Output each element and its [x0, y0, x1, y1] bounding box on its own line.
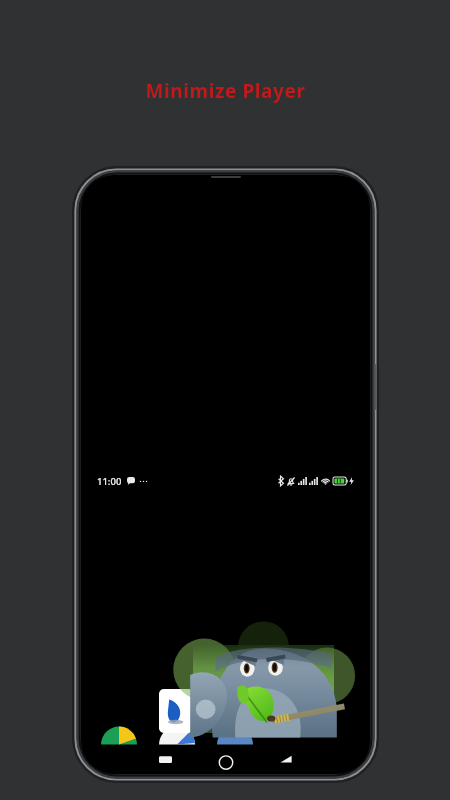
staticText: Minimize Player [145, 78, 306, 104]
staticText: 11:00 [97, 475, 122, 488]
button[interactable]: Back [256, 748, 316, 774]
button[interactable]: Home [196, 748, 256, 774]
button[interactable]: Recent apps [135, 748, 196, 774]
button[interactable]: Picture in picture video [193, 645, 334, 733]
